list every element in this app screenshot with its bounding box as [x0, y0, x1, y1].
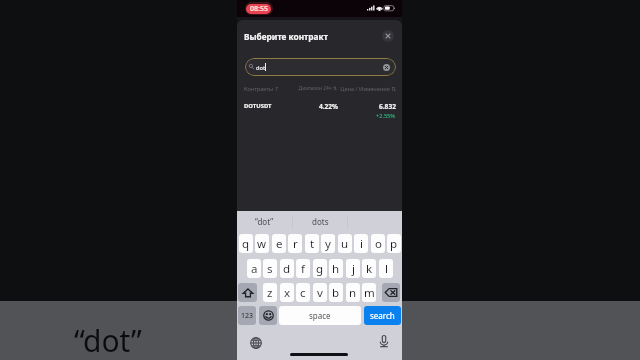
staticText: Контракты ↑ — [244, 85, 280, 93]
button[interactable]: DOTUSDT — [237, 98, 402, 120]
staticText: u — [341, 236, 349, 252]
button[interactable]: Close — [382, 30, 394, 42]
staticText: space — [309, 310, 331, 321]
staticText: z — [267, 285, 273, 301]
staticText: dots — [312, 216, 329, 227]
staticText: dot — [256, 64, 266, 72]
button[interactable]: w — [255, 234, 269, 253]
button[interactable]: z — [263, 283, 277, 302]
staticText: c — [300, 285, 306, 301]
staticText: m — [364, 285, 375, 301]
button[interactable]: v — [313, 283, 327, 302]
button[interactable]: n — [346, 283, 360, 302]
button[interactable]: h — [329, 259, 343, 278]
button[interactable]: Clear text — [383, 64, 390, 71]
staticText: +2.55% — [376, 112, 396, 120]
button[interactable]: l — [379, 259, 393, 278]
button[interactable]: p — [387, 234, 401, 253]
staticText: 123 — [241, 311, 254, 321]
button[interactable]: space — [279, 306, 361, 325]
staticText: o — [375, 236, 382, 252]
staticText: v — [317, 285, 323, 301]
staticText: s — [267, 261, 273, 277]
button[interactable]: Change keyboard — [247, 334, 264, 351]
staticText: t — [310, 236, 315, 252]
staticText: “dot” — [74, 320, 142, 360]
staticText: q — [242, 236, 250, 252]
staticText: b — [332, 285, 340, 301]
button[interactable]: u — [338, 234, 352, 253]
staticText: 6.832 — [379, 102, 396, 111]
staticText: n — [349, 285, 357, 301]
button[interactable]: o — [371, 234, 385, 253]
button[interactable]: s — [263, 259, 277, 278]
button[interactable]: dots — [293, 211, 347, 232]
staticText: Выберите контракт — [244, 31, 328, 42]
button[interactable]: q — [239, 234, 253, 253]
staticText: l — [385, 261, 388, 277]
button[interactable]: “dot” — [237, 211, 292, 232]
staticText: j — [352, 261, 355, 277]
staticText: p — [390, 236, 398, 252]
staticText: 4.22% — [297, 102, 338, 111]
button[interactable]: b — [329, 283, 343, 302]
staticText: w — [257, 236, 267, 252]
button[interactable]: e — [272, 234, 286, 253]
staticText: Диапазон 24ч ⇅ — [293, 85, 337, 92]
staticText: i — [360, 236, 363, 252]
button[interactable]: x — [280, 283, 294, 302]
staticText: DOTUSDT — [244, 102, 272, 110]
button[interactable]: d — [280, 259, 294, 278]
staticText: r — [293, 236, 298, 252]
staticText: y — [325, 236, 331, 252]
button[interactable]: search — [364, 306, 401, 325]
button[interactable]: 123 — [238, 306, 256, 325]
staticText: f — [301, 261, 305, 277]
button[interactable]: Emoji — [259, 306, 277, 325]
staticText: “dot” — [255, 216, 274, 227]
button[interactable]: k — [362, 259, 376, 278]
button[interactable]: dot — [245, 58, 396, 76]
button[interactable]: y — [321, 234, 335, 253]
staticText: h — [332, 261, 340, 277]
button[interactable]: t — [305, 234, 319, 253]
button[interactable]: r — [288, 234, 302, 253]
button[interactable]: Backspace — [382, 283, 400, 302]
staticText: k — [366, 261, 373, 277]
button[interactable]: c — [296, 283, 310, 302]
staticText: d — [283, 261, 291, 277]
staticText: 08:55 — [250, 4, 268, 14]
staticText: Цена / Изменение ⇅ — [338, 85, 396, 93]
button[interactable]: g — [313, 259, 327, 278]
button[interactable]: Dictation — [375, 333, 392, 350]
staticText: a — [251, 261, 258, 277]
button[interactable]: m — [362, 283, 376, 302]
button[interactable]: a — [247, 259, 261, 278]
button[interactable]: j — [346, 259, 360, 278]
button[interactable]: i — [354, 234, 368, 253]
staticText: search — [370, 310, 395, 321]
staticText: x — [284, 285, 291, 301]
staticText: g — [316, 261, 324, 277]
staticText: e — [276, 236, 283, 252]
button[interactable]: Shift — [238, 283, 257, 302]
button[interactable]: f — [296, 259, 310, 278]
